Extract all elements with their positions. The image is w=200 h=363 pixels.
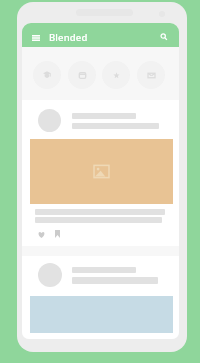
button[interactable]: Bookmark [51, 228, 63, 240]
button[interactable]: Like [35, 228, 47, 240]
button[interactable]: Menu [27, 29, 45, 47]
staticText: Blended [49, 31, 88, 44]
button[interactable]: Courses [33, 61, 61, 89]
button[interactable]: Mail [137, 61, 165, 89]
button[interactable]: Schedule [68, 61, 96, 89]
button[interactable]: Favorites [102, 61, 130, 89]
button[interactable]: Search [155, 28, 173, 46]
